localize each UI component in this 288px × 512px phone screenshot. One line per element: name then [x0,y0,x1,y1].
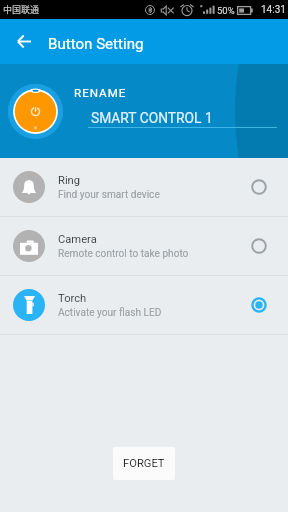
staticText: FORGET [123,457,165,470]
button[interactable]: Navigate up [6,23,42,59]
staticText: SMART CONTROL 1 [91,110,213,126]
staticText: Remote control to take photo [58,248,189,260]
staticText: Activate your flash LED [58,307,162,319]
staticText: RENAME [74,86,127,100]
staticText: 14:31 [261,4,286,16]
button[interactable]: Ring [0,158,288,216]
staticText: 中国联通 [3,3,40,16]
staticText: Find your smart device [58,189,160,201]
staticText: Torch [58,292,87,305]
button[interactable]: Camera [239,226,279,266]
staticText: Button Setting [48,35,144,53]
staticText: 50% [217,5,235,16]
button[interactable]: Torch [239,285,279,325]
button[interactable]: Camera [0,217,288,275]
button[interactable]: Torch [0,276,288,334]
button[interactable]: Power [7,83,64,140]
button[interactable]: FORGET [113,447,175,480]
button[interactable]: Ring [239,167,279,207]
staticText: Camera [58,233,97,246]
staticText: Ring [58,174,81,187]
